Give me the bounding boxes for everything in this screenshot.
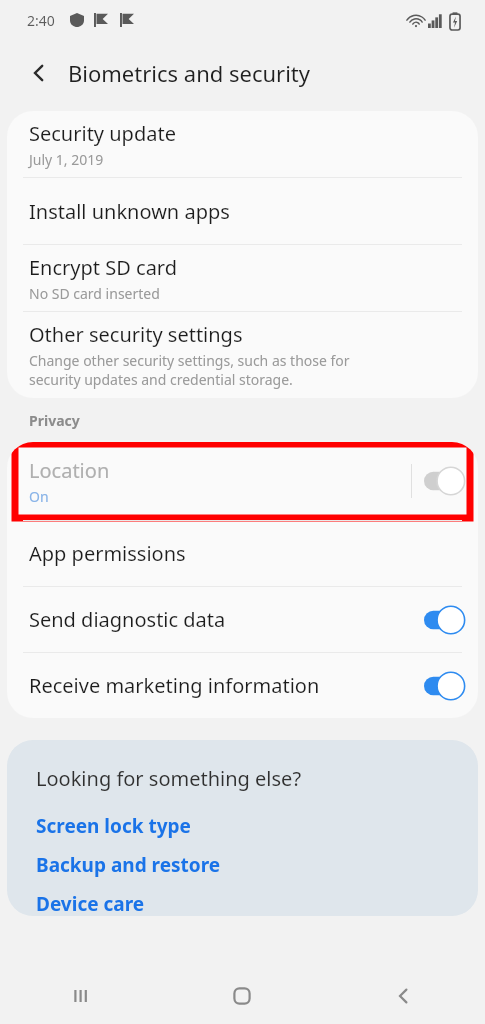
button[interactable]: Backup and restore (7, 852, 478, 878)
staticText: On (29, 487, 49, 506)
staticText: Privacy (29, 411, 80, 430)
button[interactable]: Install unknown apps (7, 178, 478, 244)
staticText: Other security settings (29, 321, 243, 348)
staticText: Biometrics and security (68, 58, 311, 88)
staticText: Backup and restore (36, 852, 221, 878)
button[interactable]: Screen lock type (7, 813, 478, 839)
button[interactable]: App permissions (7, 521, 478, 586)
button[interactable]: Back (323, 968, 485, 1024)
staticText: Install unknown apps (29, 198, 230, 225)
staticText: 2:40 (27, 11, 55, 30)
staticText: Encrypt SD card (29, 254, 178, 281)
staticText: Send diagnostic data (29, 606, 412, 633)
staticText: Change other security settings, such as … (29, 351, 350, 389)
staticText: No SD card inserted (29, 284, 160, 303)
button[interactable]: Back (18, 52, 60, 94)
staticText: Device care (36, 891, 145, 916)
button[interactable]: Send diagnostic data (7, 587, 478, 652)
staticText: Security update (29, 120, 176, 147)
staticText: Looking for something else? (36, 765, 302, 792)
staticText: Screen lock type (36, 813, 191, 839)
staticText: Receive marketing information (29, 672, 412, 699)
button[interactable]: Recents (0, 968, 161, 1024)
button[interactable]: Location (7, 442, 478, 520)
button[interactable]: Device care (7, 891, 478, 916)
button[interactable]: Encrypt SD card (7, 245, 478, 311)
button[interactable]: Security update (7, 111, 478, 177)
staticText: App permissions (29, 540, 186, 567)
button[interactable]: Home (161, 968, 323, 1024)
staticText: July 1, 2019 (29, 150, 104, 169)
staticText: Location (29, 457, 110, 484)
button[interactable]: Receive marketing information (7, 653, 478, 718)
button[interactable]: Other security settings (7, 312, 478, 398)
